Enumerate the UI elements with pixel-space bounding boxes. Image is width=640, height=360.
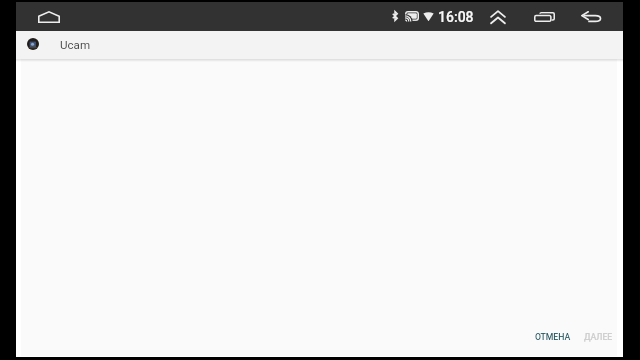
button[interactable]: Home (26, 2, 72, 31)
staticText: Ucam (60, 38, 91, 52)
button[interactable]: Recent apps (523, 2, 563, 31)
button[interactable]: ДАЛЕЕ (579, 327, 617, 347)
staticText: ОТМЕНА (535, 332, 571, 342)
button[interactable]: Expand status bar (478, 2, 518, 31)
staticText: ДАЛЕЕ (584, 332, 613, 342)
button[interactable]: ОТМЕНА (532, 327, 574, 347)
button[interactable]: Ucam (16, 31, 623, 59)
staticText: 16:08 (438, 9, 474, 25)
button[interactable]: Back (571, 2, 611, 31)
